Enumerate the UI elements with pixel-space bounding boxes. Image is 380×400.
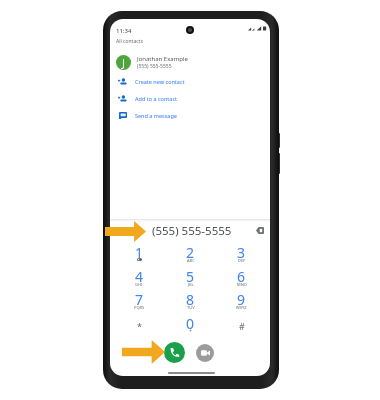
button[interactable]: 1 (113, 242, 165, 266)
button[interactable]: Add to a contact (110, 90, 270, 107)
button[interactable]: 4 (113, 266, 165, 290)
staticText: 5 (186, 267, 195, 286)
staticText: Create new contact (135, 78, 185, 85)
staticText: JKL (188, 282, 194, 287)
staticText: (555) 555-5555 (137, 63, 172, 70)
button[interactable]: 2 (165, 242, 216, 266)
staticText: 8 (186, 290, 195, 309)
staticText: (555) 555-5555 (152, 223, 232, 239)
button[interactable]: 8 (165, 289, 216, 313)
staticText: 1 (135, 243, 144, 262)
button[interactable]: Backspace (256, 227, 264, 234)
button[interactable]: Video call (196, 344, 214, 362)
button[interactable]: 7 (113, 289, 165, 313)
button[interactable]: # (216, 313, 267, 337)
staticText: MNO (237, 282, 247, 287)
button[interactable]: Send a message (110, 107, 270, 124)
staticText: WXYZ (236, 305, 247, 310)
button[interactable]: Call (164, 342, 185, 363)
staticText: DEF (238, 258, 246, 263)
staticText: 4 (135, 267, 144, 286)
staticText: Add to a contact (135, 95, 178, 102)
staticText: 0 (186, 314, 195, 333)
button[interactable]: 0 (165, 313, 216, 337)
button[interactable]: * (113, 313, 165, 337)
button[interactable]: 9 (216, 289, 267, 313)
staticText: + (189, 328, 192, 335)
staticText: PQRS (134, 305, 145, 310)
staticText: ABC (187, 258, 195, 263)
staticText: GHI (135, 282, 143, 287)
staticText: Send a message (135, 112, 177, 119)
staticText: 11:34 (116, 27, 132, 35)
button[interactable]: 5 (165, 266, 216, 290)
staticText: TUV (187, 305, 195, 310)
staticText: J (122, 55, 126, 70)
staticText: 9 (237, 290, 246, 309)
button[interactable]: J (110, 51, 270, 73)
staticText: 3 (237, 243, 246, 262)
staticText: 7 (135, 290, 144, 309)
button[interactable]: Create new contact (110, 73, 270, 90)
staticText: 6 (237, 267, 246, 286)
staticText: * (137, 320, 142, 332)
staticText: Jonathan Example (137, 55, 188, 63)
staticText: 2 (186, 243, 195, 262)
button[interactable]: 3 (216, 242, 267, 266)
button[interactable]: 6 (216, 266, 267, 290)
staticText: # (239, 320, 245, 332)
staticText: All contacts (116, 38, 143, 45)
